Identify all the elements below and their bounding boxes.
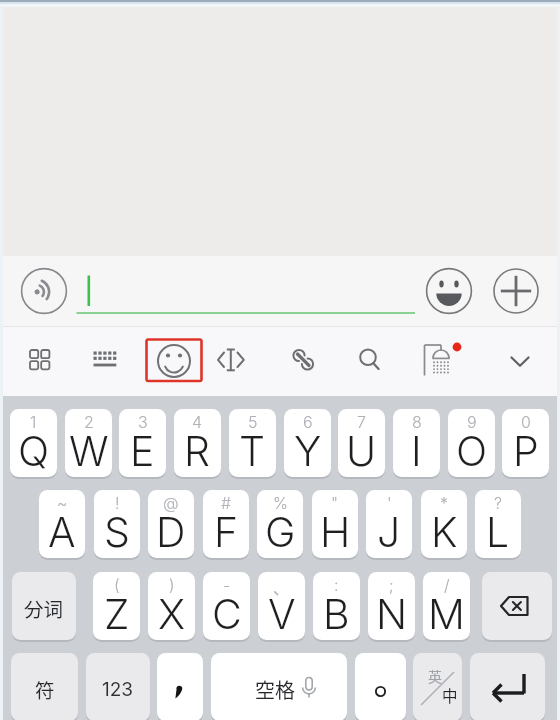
button[interactable]: ): [148, 572, 195, 642]
staticText: N: [376, 589, 408, 639]
staticText: -: [223, 575, 231, 594]
button[interactable]: -: [203, 572, 250, 642]
button[interactable]: 符: [11, 653, 78, 720]
button[interactable]: [355, 653, 406, 720]
staticText: O: [456, 426, 488, 476]
button[interactable]: ;: [368, 572, 415, 642]
button[interactable]: @: [148, 490, 194, 560]
staticText: V: [268, 589, 296, 639]
staticText: 5: [248, 412, 258, 431]
staticText: 分词: [24, 594, 64, 622]
button[interactable]: (: [93, 572, 140, 642]
staticText: #: [221, 493, 232, 512]
staticText: 4: [192, 412, 203, 431]
button[interactable]: 3: [119, 409, 166, 479]
button[interactable]: 英: [413, 653, 462, 720]
button[interactable]: 1: [10, 409, 57, 479]
staticText: Q: [18, 426, 50, 476]
button[interactable]: [493, 268, 539, 314]
staticText: X: [158, 589, 186, 639]
staticText: /: [444, 575, 450, 594]
button[interactable]: #: [203, 490, 249, 560]
button[interactable]: [426, 268, 472, 314]
staticText: ): [169, 575, 175, 594]
staticText: 符: [35, 675, 55, 703]
staticText: H: [320, 507, 351, 557]
staticText: 空格: [255, 675, 295, 704]
button[interactable]: 9: [448, 409, 495, 479]
staticText: !: [115, 493, 120, 512]
staticText: 中: [442, 684, 458, 706]
button[interactable]: [278, 333, 330, 389]
button[interactable]: 分词: [12, 572, 76, 642]
button[interactable]: 7: [338, 409, 385, 479]
button[interactable]: *: [421, 490, 467, 560]
button[interactable]: 5: [229, 409, 276, 479]
staticText: ": [331, 493, 339, 512]
staticText: @: [163, 493, 179, 512]
staticText: 123: [102, 678, 134, 701]
staticText: G: [265, 507, 296, 557]
button[interactable]: 123: [86, 653, 150, 720]
staticText: R: [184, 426, 211, 476]
staticText: S: [104, 507, 130, 557]
button[interactable]: 空格: [211, 653, 347, 720]
button[interactable]: ~: [39, 490, 85, 560]
staticText: A: [48, 507, 76, 557]
button[interactable]: 2: [65, 409, 112, 479]
button[interactable]: :: [313, 572, 360, 642]
staticText: B: [323, 589, 350, 639]
staticText: T: [239, 426, 266, 476]
staticText: J: [377, 507, 401, 557]
staticText: ': [387, 493, 392, 512]
staticText: 、: [273, 575, 290, 598]
staticText: Y: [294, 426, 322, 476]
staticText: 2: [84, 412, 94, 431]
button[interactable]: ": [312, 490, 358, 560]
staticText: 英: [428, 666, 442, 686]
button[interactable]: [342, 333, 394, 389]
staticText: L: [486, 507, 510, 557]
button[interactable]: [470, 653, 545, 720]
staticText: 3: [138, 412, 148, 431]
button[interactable]: 0: [502, 409, 549, 479]
staticText: 6: [303, 412, 313, 431]
staticText: 8: [412, 412, 422, 431]
staticText: D: [156, 507, 186, 557]
staticText: ?: [494, 493, 503, 512]
staticText: 0: [521, 412, 531, 431]
button[interactable]: 6: [284, 409, 331, 479]
staticText: 7: [357, 412, 366, 431]
button[interactable]: %: [257, 490, 303, 560]
button[interactable]: !: [94, 490, 140, 560]
button[interactable]: [14, 333, 66, 389]
staticText: :: [334, 575, 339, 594]
button[interactable]: [148, 333, 200, 389]
button[interactable]: [411, 333, 463, 389]
staticText: E: [130, 426, 155, 476]
staticText: F: [214, 507, 239, 557]
button[interactable]: 8: [393, 409, 440, 479]
staticText: %: [273, 493, 288, 512]
button[interactable]: ?: [475, 490, 521, 560]
button[interactable]: [494, 333, 546, 389]
button[interactable]: 4: [174, 409, 221, 479]
button[interactable]: ': [366, 490, 412, 560]
staticText: ~: [57, 493, 68, 512]
staticText: 1: [30, 412, 37, 431]
button[interactable]: [79, 333, 131, 389]
staticText: I: [411, 426, 422, 476]
button[interactable]: [76, 264, 416, 316]
button[interactable]: [482, 572, 552, 642]
button[interactable]: /: [423, 572, 470, 642]
staticText: (: [114, 575, 120, 594]
button[interactable]: [21, 268, 67, 314]
staticText: Z: [104, 589, 130, 639]
button[interactable]: [205, 333, 257, 389]
button[interactable]: 、: [258, 572, 305, 642]
staticText: K: [431, 507, 458, 557]
button[interactable]: [157, 653, 203, 720]
staticText: *: [440, 493, 449, 512]
staticText: U: [346, 426, 377, 476]
staticText: M: [428, 589, 465, 639]
